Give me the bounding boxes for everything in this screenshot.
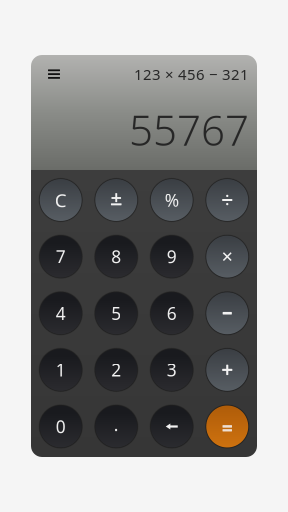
staticText: 9 xyxy=(167,245,177,268)
button[interactable]: 9 xyxy=(151,236,193,278)
button[interactable]: 8 xyxy=(95,236,137,278)
staticText: 5 xyxy=(111,302,121,325)
button[interactable]: Divide xyxy=(206,179,248,221)
button[interactable]: 3 xyxy=(151,349,193,391)
button[interactable]: Equals xyxy=(206,405,248,447)
button[interactable]: 4 xyxy=(40,292,82,334)
staticText: 2 xyxy=(111,358,121,381)
staticText: % xyxy=(165,188,179,211)
button[interactable]: Menu xyxy=(42,64,66,84)
button[interactable]: . xyxy=(95,405,137,447)
staticText: 7 xyxy=(56,245,66,268)
button[interactable]: Plus xyxy=(206,349,248,391)
button[interactable]: 6 xyxy=(151,292,193,334)
button[interactable]: 2 xyxy=(95,349,137,391)
staticText: 0 xyxy=(56,415,66,438)
staticText: 1 xyxy=(56,358,66,381)
staticText: 55767 xyxy=(129,101,249,158)
staticText: 8 xyxy=(111,245,121,268)
button[interactable]: Minus xyxy=(206,292,248,334)
staticText: 3 xyxy=(167,358,177,381)
button[interactable]: Delete xyxy=(151,405,193,447)
staticText: 123 × 456 − 321 xyxy=(134,64,249,84)
button[interactable]: Multiply xyxy=(206,236,248,278)
button[interactable]: C xyxy=(40,179,82,221)
staticText: 4 xyxy=(56,302,66,325)
button[interactable]: % xyxy=(151,179,193,221)
button[interactable]: 5 xyxy=(95,292,137,334)
staticText: C xyxy=(55,188,67,212)
button[interactable]: Plus minus xyxy=(95,179,137,221)
staticText: . xyxy=(114,413,119,436)
button[interactable]: 1 xyxy=(40,349,82,391)
button[interactable]: 7 xyxy=(40,236,82,278)
button[interactable]: 0 xyxy=(40,405,82,447)
staticText: 6 xyxy=(167,302,177,325)
